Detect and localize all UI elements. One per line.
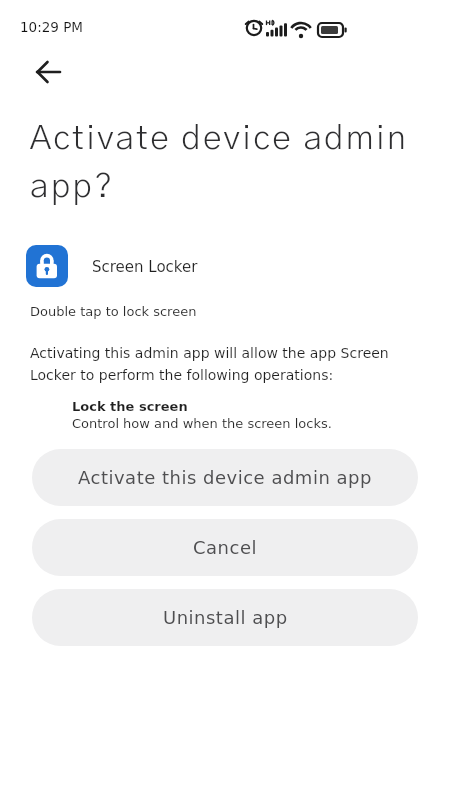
button[interactable]: Cancel	[32, 519, 418, 576]
staticText: app?	[30, 170, 115, 204]
button[interactable]: Activate this device admin app	[32, 449, 418, 506]
staticText: Double tap to lock screen	[30, 304, 197, 319]
staticText: Uninstall app	[163, 607, 288, 628]
staticText: Control how and when the screen locks.	[72, 416, 332, 431]
button[interactable]: Screen Locker	[26, 245, 198, 287]
button[interactable]	[26, 55, 70, 89]
staticText: Cancel	[193, 537, 257, 558]
staticText: Lock the screen	[72, 399, 188, 414]
button[interactable]: Uninstall app	[32, 589, 418, 646]
staticText: Activate this device admin app	[78, 467, 372, 488]
staticText: Activating this admin app will allow the…	[30, 345, 389, 383]
staticText: Screen Locker	[92, 258, 198, 275]
staticText: Activate device admin	[30, 122, 409, 156]
staticText: 10:29 PM	[20, 19, 83, 35]
